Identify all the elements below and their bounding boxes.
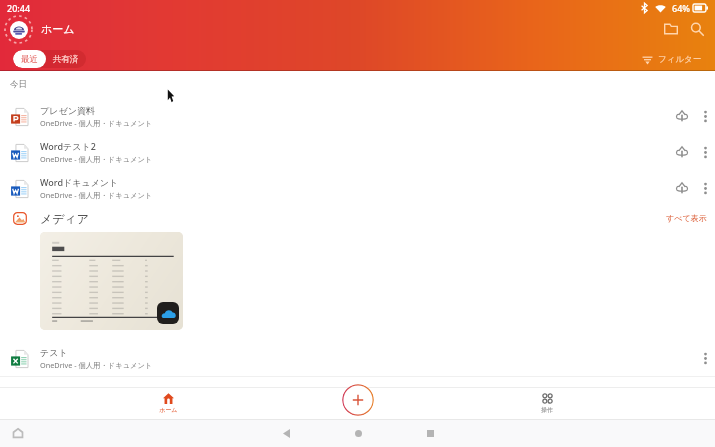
button[interactable]: Recents <box>419 422 441 444</box>
staticText: Wordドキュメント <box>40 176 119 188</box>
button[interactable]: 共有済 <box>46 50 86 68</box>
staticText: ホーム <box>41 22 75 36</box>
button[interactable]: Home <box>347 422 369 444</box>
staticText: フィルター <box>658 54 702 65</box>
button[interactable]: Download <box>670 140 694 164</box>
button[interactable]: More options <box>695 142 715 162</box>
button[interactable]: More options <box>695 178 715 198</box>
staticText: ホーム <box>159 406 178 414</box>
button[interactable]: Wordドキュメント <box>0 170 715 206</box>
staticText: OneDrive - 個人用・ドキュメント <box>40 190 153 200</box>
button[interactable]: 最近 <box>13 50 46 68</box>
button[interactable]: 操作 <box>452 387 641 419</box>
button[interactable]: Back <box>275 422 297 444</box>
staticText: 操作 <box>541 406 553 414</box>
button[interactable]: Download <box>670 104 694 128</box>
button[interactable]: More options <box>695 348 715 368</box>
staticText: 最近 <box>21 54 38 65</box>
button[interactable]: テスト <box>0 340 715 376</box>
staticText: 今日 <box>10 79 27 90</box>
button[interactable]: フィルター <box>636 52 708 67</box>
button[interactable]: Wordテスト2 <box>0 134 715 170</box>
staticText: OneDrive - 個人用・ドキュメント <box>40 360 153 370</box>
button[interactable]: Search <box>684 16 710 42</box>
staticText: OneDrive - 個人用・ドキュメント <box>40 154 153 164</box>
staticText: プレゼン資料 <box>40 105 95 116</box>
staticText: 共有済 <box>53 54 79 65</box>
staticText: テスト <box>40 347 68 358</box>
staticText: OneDrive - 個人用・ドキュメント <box>40 118 153 128</box>
staticText: 20:44 <box>7 2 31 14</box>
button[interactable]: Account <box>4 15 33 44</box>
staticText: Wordテスト2 <box>40 140 96 152</box>
staticText: メディア <box>40 211 90 226</box>
button[interactable]: Create new <box>263 387 452 419</box>
staticText: 64% <box>672 2 690 14</box>
button[interactable]: Download <box>670 176 694 200</box>
button[interactable]: すべて表示 <box>660 210 713 226</box>
button[interactable]: プレゼン資料 <box>0 98 715 134</box>
button[interactable]: メディア <box>0 206 715 230</box>
button[interactable]: Folders <box>658 16 684 42</box>
button[interactable]: Home shortcut <box>10 425 26 441</box>
button[interactable]: Media item <box>40 232 183 330</box>
staticText: すべて表示 <box>666 213 707 223</box>
button[interactable]: More options <box>695 106 715 126</box>
button[interactable]: ホーム <box>74 387 263 419</box>
